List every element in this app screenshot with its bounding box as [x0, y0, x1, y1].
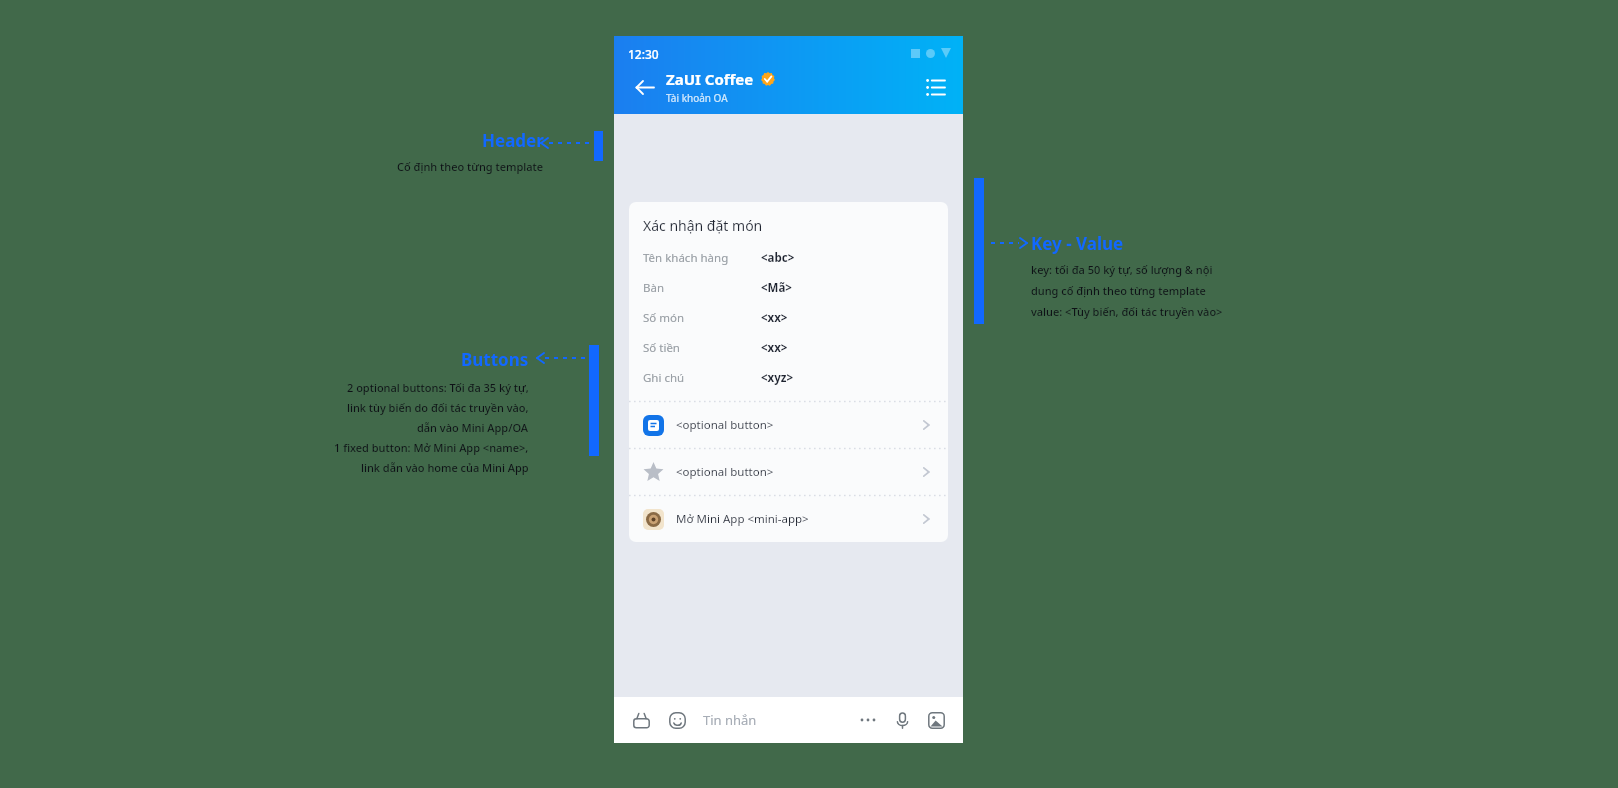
button[interactable]: Photos: [923, 707, 949, 733]
staticText: Cố định theo từng template: [397, 159, 544, 174]
staticText: <xx>: [761, 310, 788, 326]
staticText: Tên khách hàng: [643, 250, 761, 266]
button[interactable]: Voice message: [889, 707, 915, 733]
staticText: <optional button>: [676, 417, 920, 433]
staticText: key: tối đa 50 ký tự, số lượng & nội: [1031, 262, 1213, 277]
button[interactable]: Menu: [919, 71, 951, 103]
button[interactable]: Stickers: [628, 707, 654, 733]
button[interactable]: Tin nhắn: [703, 711, 855, 729]
staticText: Số món: [643, 310, 761, 326]
staticText: Buttons: [461, 348, 529, 371]
button[interactable]: More options: [855, 707, 881, 733]
staticText: Số tiền: [643, 340, 761, 356]
staticText: Ghi chú: [643, 370, 761, 386]
staticText: dẫn vào Mini App/OA: [417, 420, 529, 435]
staticText: Xác nhận đặt món: [643, 216, 763, 235]
staticText: link tùy biến do đối tác truyền vào,: [347, 400, 529, 415]
staticText: link dẫn vào home của Mini App: [361, 460, 529, 475]
staticText: 1 fixed button: Mở Mini App <name>,: [334, 440, 529, 455]
staticText: Bàn: [643, 280, 761, 296]
staticText: <Mã>: [761, 280, 792, 296]
button[interactable]: Back: [628, 71, 660, 103]
staticText: 12:30: [628, 46, 659, 62]
button[interactable]: Mở Mini App <mini-app>: [629, 496, 948, 542]
staticText: <xx>: [761, 340, 788, 356]
staticText: <abc>: [761, 250, 795, 266]
staticText: ZaUI Coffee: [666, 69, 754, 89]
staticText: Key - Value: [1031, 232, 1124, 255]
staticText: Tài khoản OA: [666, 91, 728, 105]
staticText: <xyz>: [761, 370, 794, 386]
staticText: Mở Mini App <mini-app>: [676, 511, 920, 527]
staticText: Header: [482, 129, 544, 152]
staticText: 2 optional buttons: Tối đa 35 ký tự,: [347, 380, 529, 395]
staticText: value: <Tùy biến, đối tác truyền vào>: [1031, 304, 1223, 319]
button[interactable]: Emoji: [664, 707, 690, 733]
staticText: dung cố định theo từng template: [1031, 283, 1206, 298]
button[interactable]: <optional button>: [629, 402, 948, 448]
button[interactable]: <optional button>: [629, 449, 948, 495]
staticText: <optional button>: [676, 464, 920, 480]
